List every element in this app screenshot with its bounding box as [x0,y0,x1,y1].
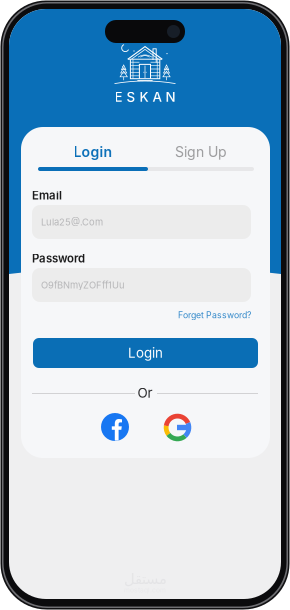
staticText: Login [128,345,163,361]
button[interactable]: Login [38,137,148,167]
staticText: مستقل [123,570,166,588]
staticText: Password [32,252,85,265]
button[interactable]: Sign in with Google [163,413,192,442]
staticText: Email [32,189,62,202]
staticText: Sign Up [175,143,227,160]
staticText: Or [137,385,152,401]
staticText: O9fBNmyZOFff1Uu [41,279,125,291]
staticText: Lula25@.Com [41,216,103,228]
staticText: Forget Password? [178,310,251,320]
button[interactable]: Sign in with Facebook [101,413,129,441]
button[interactable]: Forget Password? [151,309,251,321]
staticText: E S K A N [114,89,175,105]
staticText: Login [73,143,112,160]
button[interactable]: Sign Up [148,137,254,167]
button[interactable]: Login [33,338,258,368]
